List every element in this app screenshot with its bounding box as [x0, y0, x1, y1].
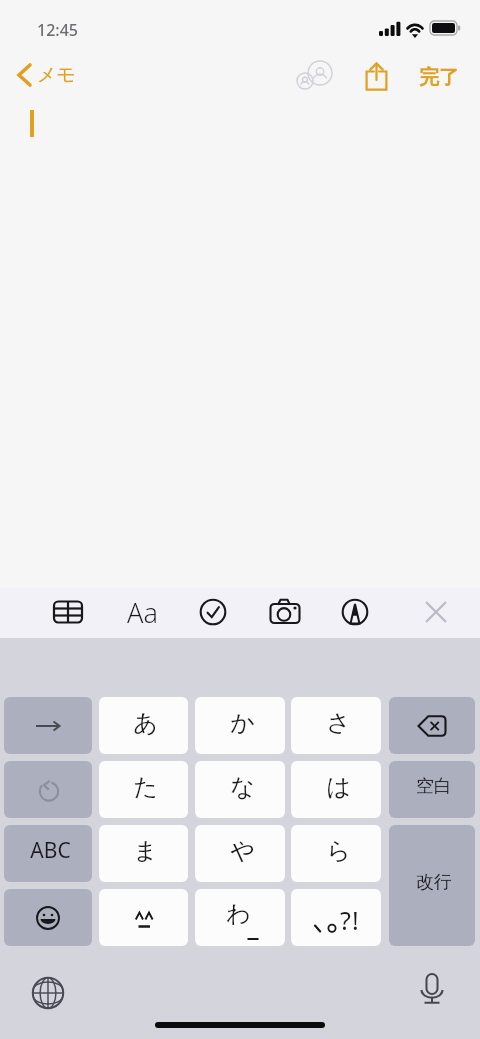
button[interactable]: Undo — [4, 761, 92, 818]
button[interactable]: Tab — [4, 697, 92, 754]
button[interactable]: Punctuation — [291, 889, 381, 946]
staticText: わ — [226, 899, 251, 929]
button[interactable]: 空白 — [389, 761, 475, 818]
button[interactable]: Checklist — [189, 588, 237, 636]
staticText: た — [133, 772, 158, 802]
staticText: ABC — [30, 836, 71, 865]
staticText: 12:45 — [37, 19, 78, 41]
staticText: メモ — [37, 63, 76, 87]
button[interactable]: 改行 — [389, 825, 475, 946]
button[interactable]: Share — [356, 56, 396, 96]
button[interactable]: わ — [195, 889, 285, 946]
staticText: ?! — [340, 903, 360, 937]
button[interactable]: Aa — [118, 588, 166, 636]
button[interactable]: メモ — [8, 58, 86, 92]
staticText: か — [230, 708, 255, 738]
button[interactable]: Kaomoji — [99, 889, 188, 946]
staticText: ま — [133, 836, 158, 866]
button[interactable]: や — [195, 825, 285, 882]
staticText: Aa — [127, 594, 158, 631]
button[interactable]: Dictation — [414, 970, 451, 1012]
button[interactable]: ら — [291, 825, 381, 882]
button[interactable]: Camera — [261, 588, 309, 636]
staticText: や — [230, 836, 255, 866]
staticText: は — [326, 772, 351, 802]
button[interactable]: Emoji — [4, 889, 92, 946]
staticText: ら — [326, 836, 351, 866]
button[interactable]: あ — [99, 697, 188, 754]
button[interactable]: ABC — [4, 825, 92, 882]
button[interactable]: Add People — [289, 56, 341, 100]
staticText: あ — [133, 708, 158, 738]
staticText: 改行 — [416, 871, 452, 894]
button[interactable]: さ — [291, 697, 381, 754]
button[interactable]: か — [195, 697, 285, 754]
button[interactable]: Markup — [331, 588, 379, 636]
staticText: さ — [326, 708, 351, 738]
staticText: な — [230, 772, 255, 802]
button[interactable]: 完了 — [410, 57, 468, 98]
staticText: 空白 — [416, 775, 452, 798]
button[interactable]: Delete — [389, 697, 475, 754]
button[interactable]: Change keyboard — [26, 971, 70, 1015]
button[interactable]: Table — [44, 588, 92, 636]
button[interactable]: な — [195, 761, 285, 818]
button[interactable]: Close — [412, 588, 460, 636]
button[interactable]: た — [99, 761, 188, 818]
staticText: 完了 — [419, 65, 459, 90]
button[interactable]: は — [291, 761, 381, 818]
button[interactable]: ま — [99, 825, 188, 882]
